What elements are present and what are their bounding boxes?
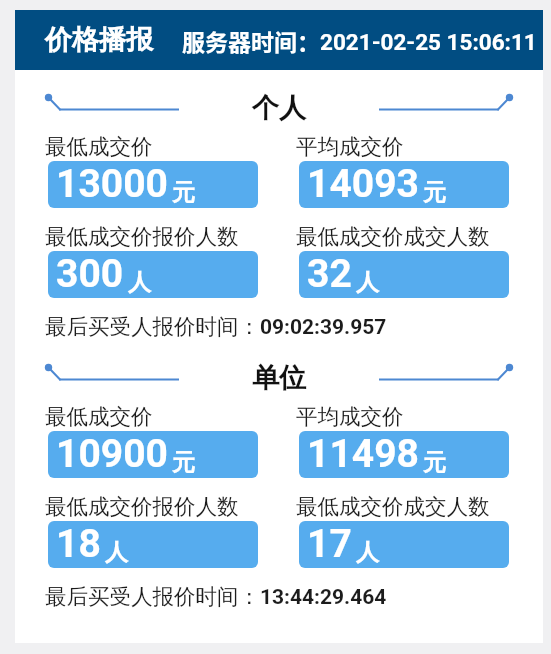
staticText: 18 [56, 521, 101, 566]
button[interactable]: 32 [299, 251, 509, 298]
staticText: 元 [172, 448, 195, 477]
staticText: 平均成交价 [296, 133, 404, 160]
staticText: 13000 [56, 161, 168, 206]
button[interactable]: 10900 [48, 431, 258, 478]
staticText: 人 [356, 538, 379, 567]
staticText: 人 [128, 268, 151, 297]
staticText: 32 [307, 251, 352, 296]
staticText: 元 [423, 178, 446, 207]
button[interactable]: 13000 [48, 161, 258, 208]
staticText: 最低成交价 [45, 403, 153, 430]
staticText: 个人 [252, 91, 306, 125]
staticText: 单位 [252, 361, 306, 395]
staticText: 平均成交价 [296, 403, 404, 430]
staticText: 最低成交价成交人数 [296, 493, 490, 520]
staticText: 10900 [56, 431, 168, 476]
staticText: 17 [307, 521, 352, 566]
button[interactable]: 17 [299, 521, 509, 568]
button[interactable]: 价格播报 [15, 10, 543, 70]
staticText: 最低成交价 [45, 133, 153, 160]
staticText: 人 [105, 538, 128, 567]
staticText: 14093 [307, 161, 419, 206]
staticText: 价格播报 [45, 23, 153, 57]
staticText: 人 [356, 268, 379, 297]
staticText: 2021-02-25 15:06:11 [320, 29, 537, 55]
staticText: 元 [172, 178, 195, 207]
staticText: 13:44:29.464 [260, 585, 387, 610]
button[interactable]: 14093 [299, 161, 509, 208]
staticText: 最后买受人报价时间： [45, 583, 260, 610]
staticText: 300 [56, 251, 124, 296]
staticText: 11498 [307, 431, 419, 476]
staticText: 元 [423, 448, 446, 477]
button[interactable]: 18 [48, 521, 258, 568]
staticText: 最低成交价成交人数 [296, 223, 490, 250]
staticText: 最低成交价报价人数 [45, 493, 239, 520]
staticText: 09:02:39.957 [260, 315, 387, 340]
staticText: 最后买受人报价时间： [45, 313, 260, 340]
staticText: 最低成交价报价人数 [45, 223, 239, 250]
staticText: 服务器时间： [182, 24, 320, 57]
button[interactable]: 300 [48, 251, 258, 298]
button[interactable]: 11498 [299, 431, 509, 478]
